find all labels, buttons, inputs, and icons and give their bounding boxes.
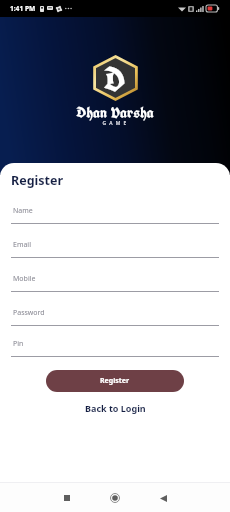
button[interactable]: Recent apps <box>53 484 81 512</box>
staticText: Email <box>13 240 31 250</box>
staticText: GAME <box>102 120 130 127</box>
staticText: Register <box>11 172 64 189</box>
staticText: Register <box>100 376 130 386</box>
staticText: Dhan Varsha <box>76 102 154 122</box>
staticText: Mobile <box>13 274 36 284</box>
button[interactable]: Register <box>46 370 184 392</box>
staticText: 1:41 PM <box>10 4 36 13</box>
button[interactable]: Home <box>101 484 129 512</box>
staticText: Name <box>13 206 33 216</box>
button[interactable]: Back to Login <box>77 399 154 417</box>
staticText: Back to Login <box>85 402 146 414</box>
staticText: Password <box>13 308 45 318</box>
staticText: Pin <box>13 339 24 349</box>
staticText: D <box>104 58 125 101</box>
button[interactable]: Back <box>149 484 177 512</box>
